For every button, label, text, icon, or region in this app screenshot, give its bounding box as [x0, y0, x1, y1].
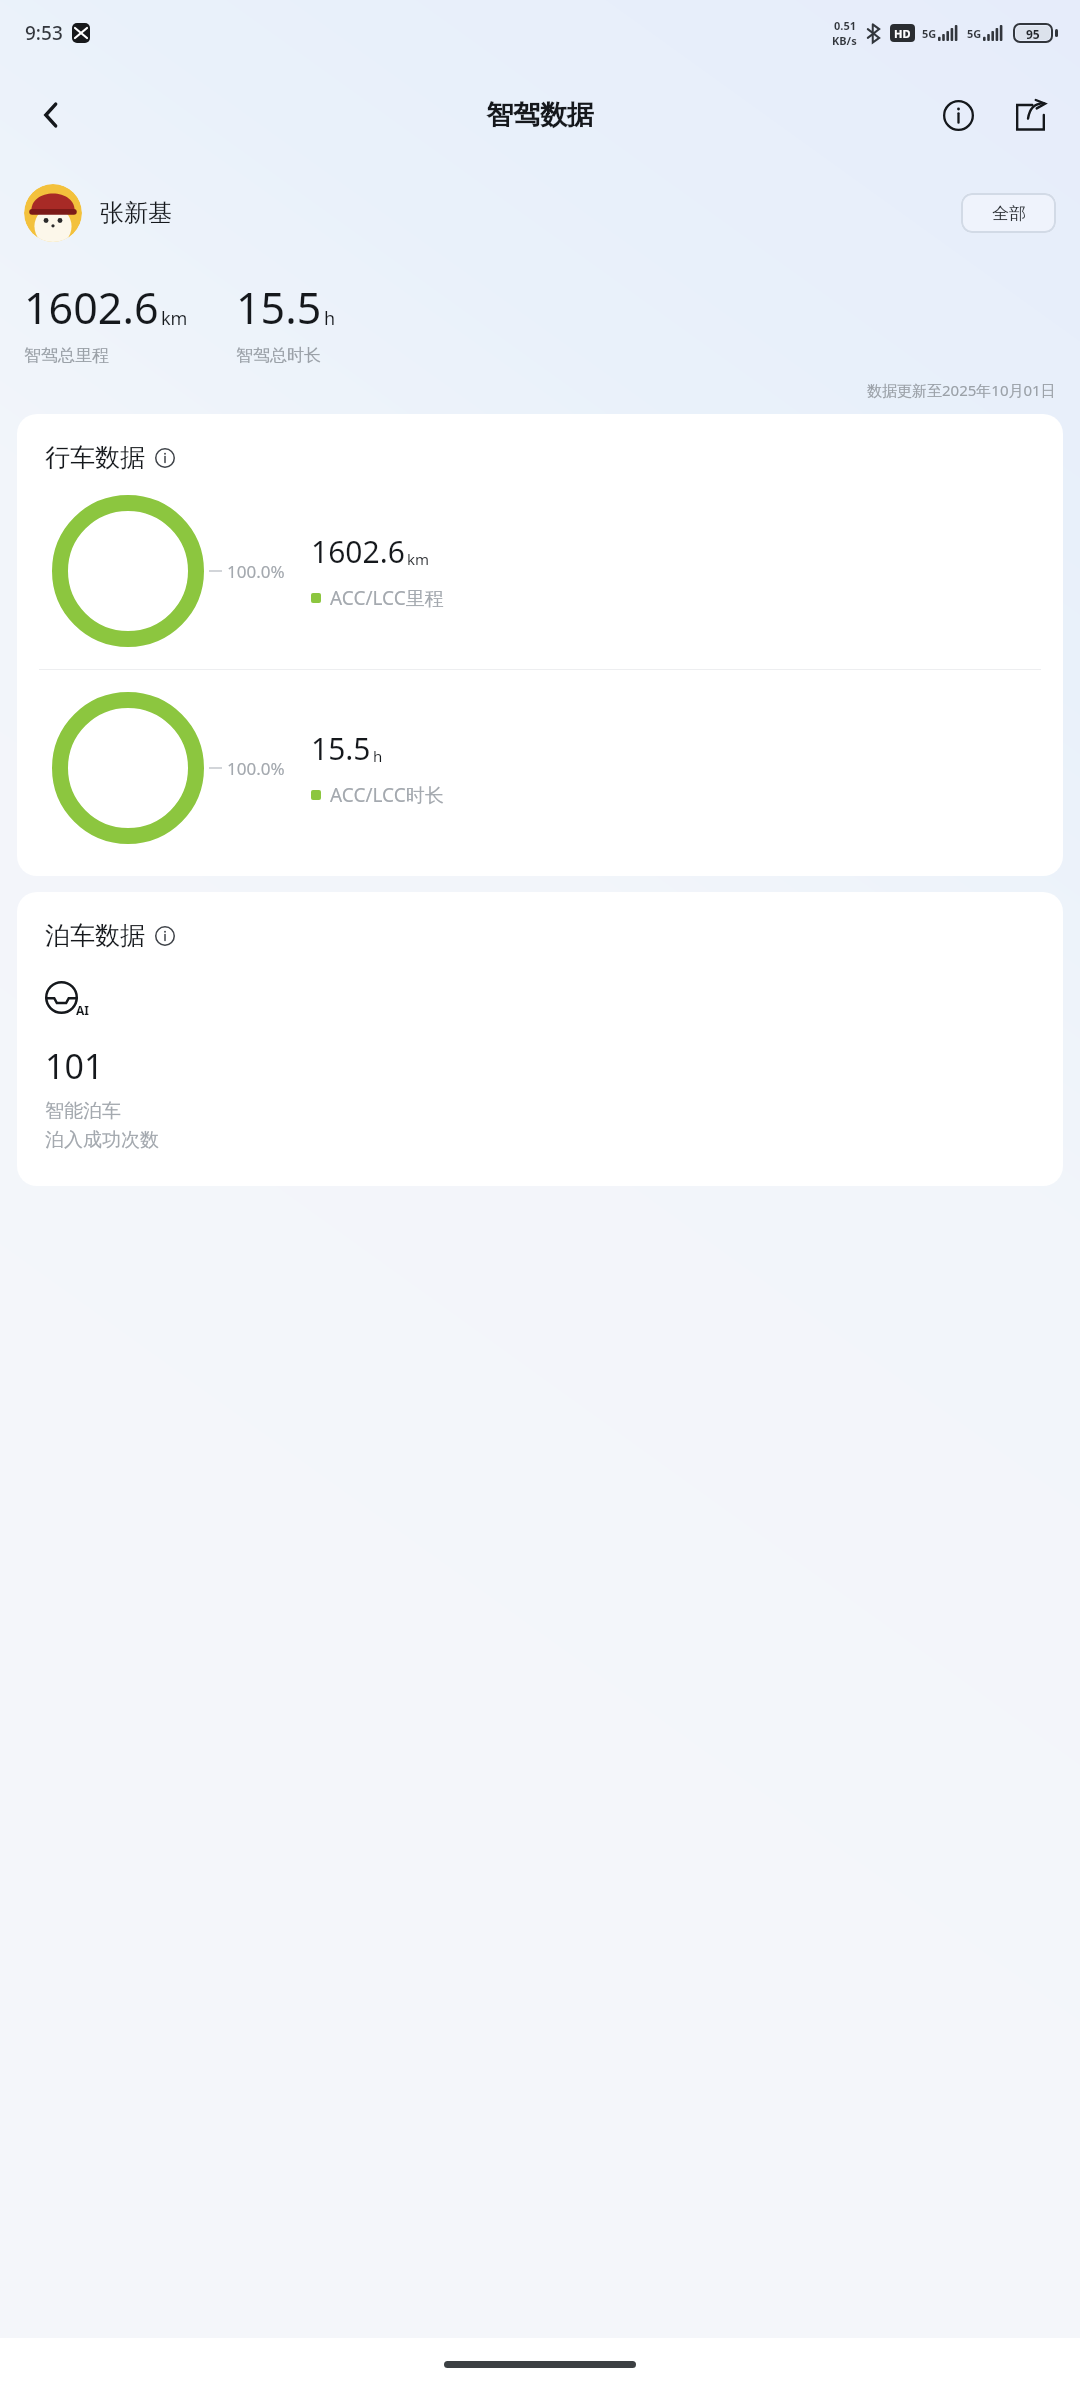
staticText: HD — [894, 26, 911, 41]
staticText: 5G — [967, 26, 982, 41]
button[interactable]: 泊车数据 — [45, 920, 175, 951]
staticText: 智驾总里程 — [24, 345, 109, 366]
staticText: 100.0% — [227, 757, 285, 780]
button[interactable]: Share — [1000, 85, 1060, 145]
staticText: 101 — [45, 1043, 104, 1089]
staticText: 数据更新至2025年10月01日 — [867, 380, 1056, 400]
staticText: ACC/LCC里程 — [330, 585, 444, 611]
staticText: 智驾总时长 — [236, 345, 321, 366]
staticText: 行车数据 — [45, 442, 145, 473]
staticText: 1602.6 — [24, 278, 159, 337]
staticText: 100.0% — [227, 560, 285, 583]
staticText: km — [161, 306, 188, 331]
staticText: 1602.6 — [311, 531, 405, 572]
button[interactable]: 全部 — [961, 193, 1056, 233]
staticText: 9:53 — [25, 20, 63, 46]
staticText: h — [324, 306, 336, 331]
button[interactable]: 行车数据 — [45, 442, 175, 473]
other: Info — [155, 448, 175, 468]
staticText: 5G — [922, 26, 937, 41]
staticText: km — [407, 549, 430, 569]
staticText: 15.5 — [236, 278, 322, 337]
staticText: 智能泊车 — [45, 1099, 121, 1123]
button[interactable]: Info — [928, 85, 988, 145]
staticText: 15.5 — [311, 728, 371, 769]
staticText: 智驾数据 — [486, 98, 594, 132]
other: AI Parking — [43, 979, 91, 1019]
staticText: AI — [76, 1002, 89, 1018]
button[interactable] — [24, 184, 82, 242]
staticText: KB/s — [832, 33, 857, 48]
other: Info — [155, 926, 175, 946]
staticText: 全部 — [992, 203, 1026, 224]
button[interactable]: Back — [20, 84, 82, 146]
staticText: 95 — [1026, 26, 1040, 40]
staticText: 泊入成功次数 — [45, 1128, 159, 1152]
staticText: 0.51 — [834, 18, 856, 33]
staticText: ACC/LCC时长 — [330, 782, 444, 808]
staticText: 泊车数据 — [45, 920, 145, 951]
staticText: 张新基 — [100, 198, 172, 228]
staticText: h — [373, 746, 383, 766]
